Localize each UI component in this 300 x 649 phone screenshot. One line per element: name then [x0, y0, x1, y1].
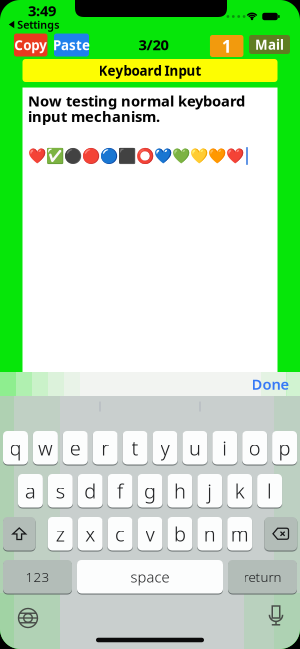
button[interactable]: g — [137, 474, 162, 507]
staticText: Mail — [255, 36, 284, 53]
button[interactable]: Mail — [249, 35, 290, 54]
staticText: f — [117, 477, 123, 504]
button[interactable]: j — [197, 474, 222, 507]
button[interactable]: b — [167, 517, 192, 550]
button[interactable]: a — [18, 474, 43, 507]
button[interactable]: k — [227, 474, 252, 507]
staticText: r — [101, 434, 109, 461]
staticText: t — [132, 434, 139, 461]
button[interactable]: p — [272, 431, 297, 464]
button[interactable]: w — [33, 431, 58, 464]
button[interactable] — [269, 606, 283, 628]
button[interactable]: c — [108, 517, 133, 550]
button[interactable]: Done — [251, 374, 289, 394]
button[interactable]: i — [212, 431, 237, 464]
staticText: Done — [251, 374, 289, 394]
button[interactable] — [264, 517, 297, 550]
button[interactable]: e — [63, 431, 88, 464]
button[interactable]: return — [228, 560, 297, 593]
staticText: u — [189, 434, 201, 461]
staticText: space — [130, 567, 169, 586]
button[interactable]: 123 — [3, 560, 72, 593]
staticText: Copy — [14, 36, 47, 54]
staticText: l — [267, 477, 272, 504]
staticText: Now testing normal keyboard — [28, 91, 245, 110]
staticText: 3/20 — [138, 35, 168, 54]
staticText: 123 — [25, 568, 49, 586]
button[interactable]: o — [242, 431, 267, 464]
button[interactable]: y — [152, 431, 177, 464]
staticText: input mechanism. — [28, 106, 160, 126]
button[interactable]: m — [227, 517, 252, 550]
staticText: Settings — [17, 17, 59, 32]
staticText: p — [279, 434, 291, 461]
button[interactable]: Paste — [54, 33, 89, 56]
staticText: 1 — [222, 34, 232, 57]
staticText: g — [144, 477, 156, 504]
staticText: x — [85, 520, 95, 547]
button[interactable]: z — [48, 517, 73, 550]
staticText: q — [9, 434, 21, 461]
button[interactable]: h — [167, 474, 192, 507]
button[interactable]: d — [78, 474, 103, 507]
staticText: z — [56, 520, 65, 547]
staticText: m — [231, 520, 249, 547]
staticText: y — [160, 434, 169, 461]
button[interactable]: l — [257, 474, 282, 507]
button[interactable]: n — [197, 517, 222, 550]
staticText: h — [174, 477, 186, 504]
staticText: o — [249, 434, 261, 461]
button[interactable]: x — [78, 517, 103, 550]
staticText: k — [235, 477, 245, 504]
staticText: v — [145, 520, 154, 547]
staticText: w — [38, 434, 53, 461]
staticText: d — [84, 477, 96, 504]
button[interactable]: r — [93, 431, 118, 464]
button[interactable]: Copy — [14, 33, 47, 56]
button[interactable]: v — [137, 517, 162, 550]
staticText: a — [25, 477, 36, 504]
staticText: s — [56, 477, 65, 504]
button[interactable]: t — [123, 431, 148, 464]
staticText: return — [243, 568, 281, 586]
button[interactable]: u — [182, 431, 207, 464]
staticText: b — [174, 520, 186, 547]
staticText: i — [222, 434, 227, 461]
button[interactable]: Settings — [9, 17, 59, 32]
button[interactable]: f — [108, 474, 133, 507]
staticText: ❤️✅⚫🔴🔵⬛⭕💙💚💛🧡❤️ — [28, 148, 244, 164]
staticText: Keyboard Input — [98, 62, 201, 79]
staticText: j — [207, 477, 212, 504]
button[interactable]: 1 — [210, 35, 243, 57]
staticText: 3:49 — [28, 1, 56, 20]
staticText: e — [70, 434, 81, 461]
staticText: n — [204, 520, 216, 547]
button[interactable]: q — [3, 431, 28, 464]
button[interactable] — [18, 608, 37, 627]
button[interactable]: space — [77, 560, 223, 593]
staticText: Paste — [53, 36, 90, 54]
button[interactable] — [3, 517, 35, 550]
staticText: c — [115, 520, 125, 547]
button[interactable]: s — [48, 474, 73, 507]
